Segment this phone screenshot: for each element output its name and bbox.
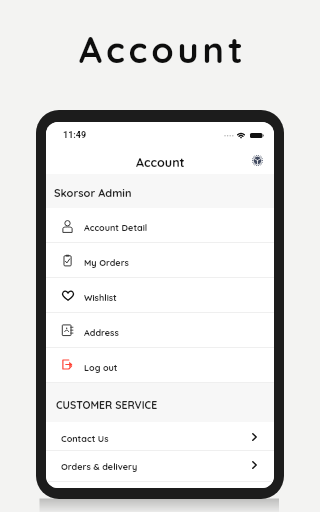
button[interactable]: Address	[46, 313, 274, 347]
staticText: Log out	[84, 362, 118, 373]
button[interactable]: Contact Us	[46, 422, 274, 450]
staticText: My Orders	[84, 257, 129, 268]
button[interactable]: Orders & delivery	[46, 451, 274, 481]
staticText: Account	[79, 27, 247, 72]
staticText: Skorsor Admin	[54, 186, 132, 200]
staticText: CUSTOMER SERVICE	[56, 398, 158, 411]
button[interactable]: My Orders	[46, 243, 274, 277]
staticText: Orders & delivery	[61, 461, 252, 472]
staticText: Address	[84, 327, 119, 338]
button[interactable]: Settings	[252, 155, 263, 166]
staticText: Account	[136, 154, 185, 170]
staticText: 11:49	[63, 130, 87, 141]
button[interactable]: Log out	[46, 348, 274, 382]
staticText: Wishlist	[84, 292, 117, 303]
staticText: Contact Us	[61, 433, 252, 444]
staticText: Account Detail	[84, 222, 148, 233]
button[interactable]: Account Detail	[46, 208, 274, 242]
button[interactable]: Wishlist	[46, 278, 274, 312]
